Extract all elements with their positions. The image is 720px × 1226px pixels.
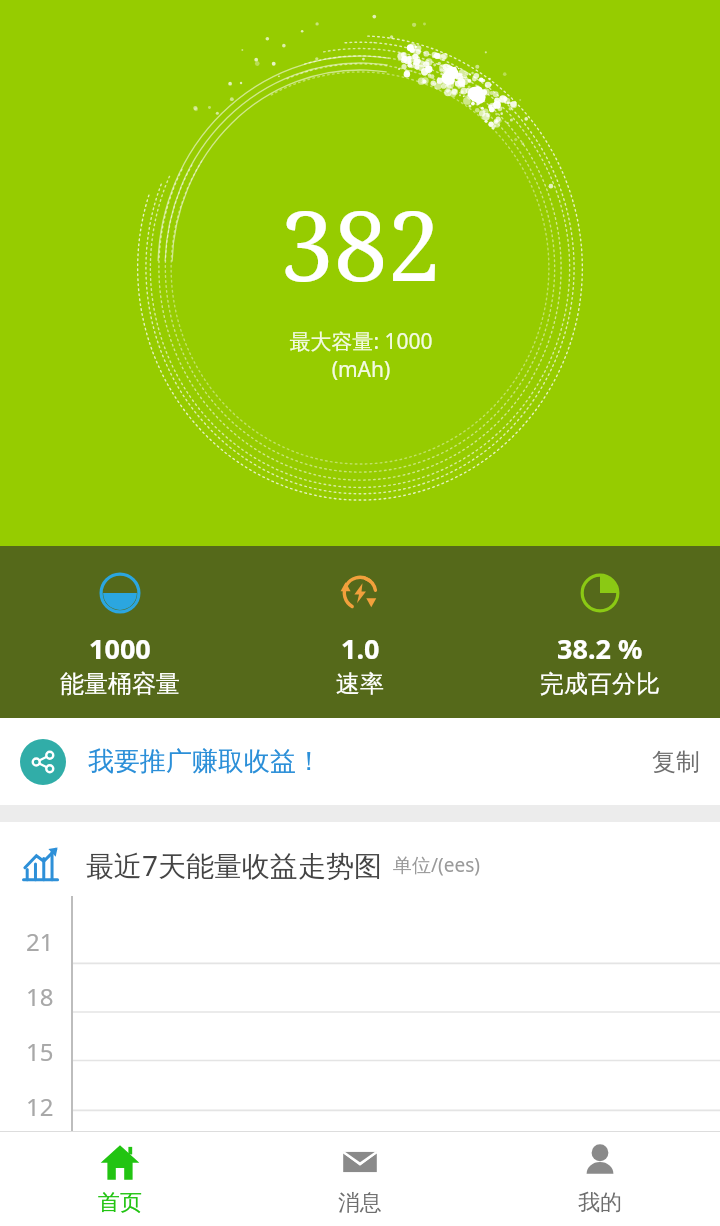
- staticText: 15: [26, 1035, 54, 1068]
- staticText: 能量桶容量: [60, 669, 180, 699]
- button[interactable]: 我要推广赚取收益！: [0, 718, 720, 805]
- staticText: 最大容量: 1000 (mAh): [289, 327, 433, 383]
- staticText: 复制: [652, 747, 700, 777]
- button[interactable]: 首页: [0, 1132, 240, 1226]
- staticText: 我要推广赚取收益！: [88, 745, 322, 778]
- button[interactable]: 我的: [480, 1132, 720, 1226]
- staticText: 1000: [89, 630, 151, 667]
- staticText: 完成百分比: [540, 669, 660, 699]
- staticText: 我的: [578, 1189, 622, 1217]
- button[interactable]: 消息: [240, 1132, 480, 1226]
- staticText: 12: [26, 1090, 54, 1123]
- staticText: 21: [26, 925, 54, 958]
- button[interactable]: 1000: [0, 546, 240, 718]
- staticText: 首页: [98, 1189, 142, 1217]
- staticText: 18: [26, 980, 54, 1013]
- staticText: 38.2 %: [557, 630, 643, 667]
- staticText: 单位/(ees): [393, 852, 481, 878]
- staticText: 消息: [338, 1189, 382, 1217]
- button[interactable]: 38.2 %: [480, 546, 720, 718]
- button[interactable]: 1.0: [240, 546, 480, 718]
- staticText: 速率: [336, 669, 384, 699]
- staticText: 382: [280, 178, 441, 309]
- staticText: 最近7天能量收益走势图: [86, 846, 383, 884]
- staticText: 1.0: [341, 630, 380, 667]
